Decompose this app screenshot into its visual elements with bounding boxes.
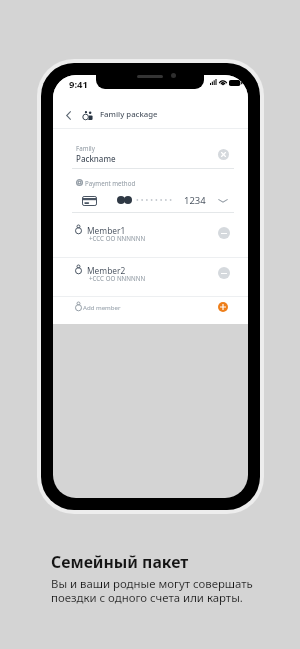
staticText: +CCC OO NNNNNN <box>89 234 146 242</box>
button[interactable] <box>53 213 248 257</box>
button[interactable] <box>53 190 248 210</box>
button[interactable]: Clear <box>216 147 230 161</box>
staticText: Семейный пакет <box>51 551 189 573</box>
button[interactable]: Remove member <box>218 227 230 239</box>
button[interactable]: Remove member <box>218 267 230 279</box>
staticText: Family <box>76 144 95 152</box>
button[interactable] <box>53 258 248 296</box>
staticText: Packname <box>76 153 116 164</box>
button[interactable]: Back <box>61 106 75 124</box>
staticText: +CCC OO NNNNNN <box>89 274 146 282</box>
staticText: 1234 <box>184 194 206 207</box>
button[interactable] <box>53 297 248 323</box>
staticText: Family package <box>100 109 158 120</box>
button[interactable]: Add member <box>218 302 228 312</box>
staticText: Member2 <box>87 265 126 276</box>
staticText: Add member <box>83 303 121 311</box>
staticText: Payment method <box>85 179 136 187</box>
staticText: Вы и ваши родные могут совершать поездки… <box>51 576 253 605</box>
staticText: Member1 <box>87 225 126 236</box>
staticText: 9:41 <box>69 78 88 91</box>
